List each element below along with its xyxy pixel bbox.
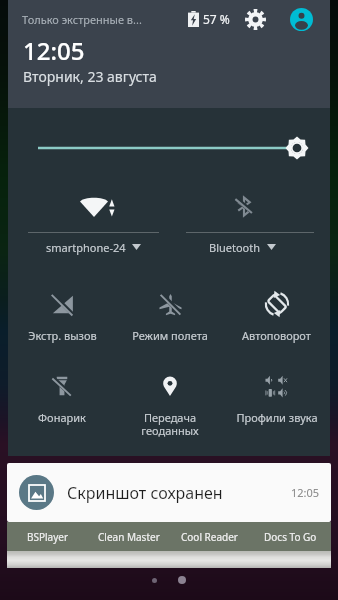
button[interactable]: Clean Master	[88, 522, 169, 551]
button[interactable]: Settings	[242, 6, 268, 32]
button[interactable]: Экстр. вызов	[8, 281, 116, 343]
staticText: Cool Reader	[181, 530, 238, 544]
staticText: smartphone-24	[46, 240, 126, 255]
staticText: Автоповорот	[242, 328, 311, 343]
button[interactable]: User profile	[288, 6, 314, 32]
staticText: Режим полета	[132, 328, 208, 343]
staticText: Docs To Go	[264, 530, 317, 544]
button[interactable]: Режим полета	[116, 281, 223, 343]
staticText: Только экстренные в...	[22, 12, 142, 27]
button[interactable]: Скриншот сохранен	[7, 463, 331, 522]
button[interactable]: smartphone-24	[8, 181, 169, 261]
button[interactable]: Профили звука	[223, 363, 330, 425]
staticText: 12:05	[23, 34, 85, 67]
button[interactable]: Автоповорот	[223, 281, 330, 343]
button[interactable]: Docs To Go	[250, 522, 331, 551]
staticText: BSPlayer	[27, 530, 69, 544]
button[interactable]: Bluetooth	[169, 181, 330, 261]
button[interactable]: BSPlayer	[7, 522, 88, 551]
staticText: Clean Master	[98, 530, 160, 544]
staticText: Передача геоданных	[141, 410, 199, 438]
staticText: Профили звука	[236, 410, 318, 425]
staticText: Вторник, 23 августа	[23, 67, 157, 86]
staticText: Фонарик	[38, 410, 86, 425]
staticText: Экстр. вызов	[28, 328, 97, 343]
button[interactable]: Cool Reader	[169, 522, 250, 551]
button[interactable]: Фонарик	[8, 363, 116, 425]
button[interactable]: Передача геоданных	[116, 363, 223, 438]
staticText: Bluetooth	[209, 240, 261, 255]
staticText: 57 %	[203, 11, 230, 27]
staticText: 12:05	[291, 485, 320, 500]
staticText: Скриншот сохранен	[67, 482, 223, 504]
